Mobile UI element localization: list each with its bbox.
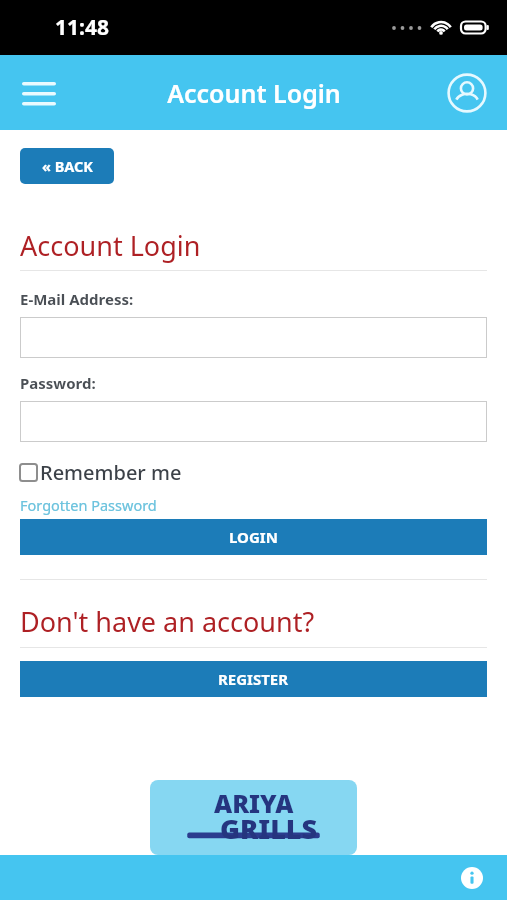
- staticText: Account Login: [20, 227, 201, 264]
- staticText: ARIYA: [214, 786, 294, 820]
- staticText: E-Mail Address:: [20, 289, 134, 309]
- button[interactable]: Forgotten Password: [20, 495, 157, 515]
- button[interactable]: Account: [441, 67, 493, 119]
- staticText: 11:48: [55, 13, 109, 42]
- staticText: Remember me: [40, 459, 182, 486]
- button[interactable]: [20, 317, 487, 358]
- button[interactable]: Info: [455, 861, 489, 895]
- staticText: LOGIN: [229, 527, 278, 547]
- button[interactable]: « BACK: [20, 148, 114, 184]
- staticText: « BACK: [42, 156, 93, 176]
- button[interactable]: REGISTER: [20, 661, 487, 697]
- staticText: Account Login: [167, 76, 341, 110]
- staticText: REGISTER: [218, 669, 289, 689]
- button[interactable]: LOGIN: [20, 519, 487, 555]
- staticText: Don't have an account?: [20, 603, 315, 640]
- staticText: GRILLS: [220, 810, 318, 847]
- button[interactable]: Menu: [12, 66, 66, 120]
- staticText: Password:: [20, 373, 96, 393]
- button[interactable]: [20, 401, 487, 442]
- button[interactable]: Ariya Grills logo: [150, 780, 357, 855]
- button[interactable]: Remember me: [20, 459, 182, 486]
